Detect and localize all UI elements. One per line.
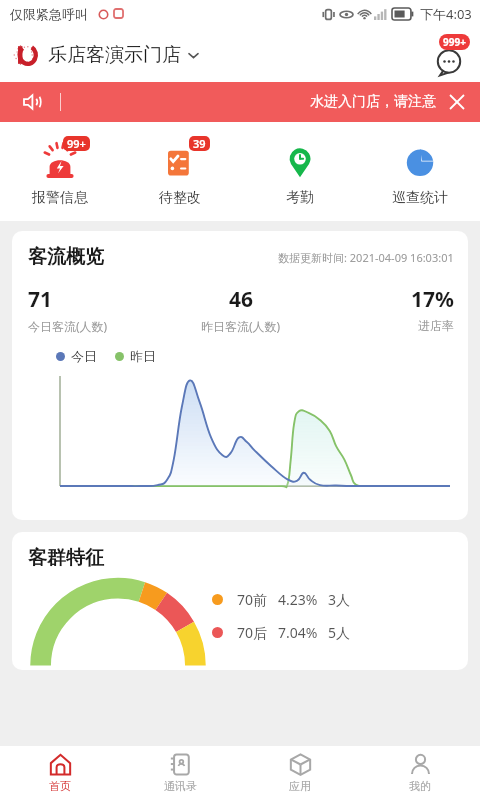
staticText: 水进入门店，请注意 <box>310 93 436 111</box>
staticText: 巡查统计 <box>392 189 448 207</box>
staticText: 17% <box>411 285 454 314</box>
other: Announcement <box>22 92 42 112</box>
staticText: 我的 <box>409 779 431 793</box>
button[interactable]: 99+ <box>0 136 120 207</box>
button[interactable]: 应用 <box>240 746 360 800</box>
staticText: 3人 <box>328 590 351 609</box>
staticText: 99+ <box>67 136 86 151</box>
staticText: 70前 <box>237 590 268 609</box>
staticText: 乐店客演示门店 <box>48 43 181 67</box>
staticText: 仅限紧急呼叫 <box>10 6 88 22</box>
button[interactable]: Messages <box>428 34 470 76</box>
staticText: 下午4:03 <box>420 5 472 23</box>
staticText: 今日 <box>71 348 97 364</box>
button[interactable]: 39 <box>120 136 240 207</box>
staticText: 首页 <box>49 779 71 793</box>
staticText: 今日客流(人数) <box>28 318 108 334</box>
button[interactable]: 巡查统计 <box>360 136 480 207</box>
staticText: 7.04% <box>278 623 318 642</box>
staticText: 999+ <box>443 35 466 49</box>
staticText: 5人 <box>328 623 351 642</box>
staticText: 考勤 <box>286 189 314 207</box>
staticText: 昨日 <box>130 348 156 364</box>
staticText: 应用 <box>289 779 311 793</box>
staticText: 70后 <box>237 623 268 642</box>
staticText: 昨日客流(人数) <box>201 318 281 334</box>
button[interactable]: 通讯录 <box>120 746 240 800</box>
staticText: 进店率 <box>418 318 454 333</box>
button[interactable]: 考勤 <box>240 136 360 207</box>
staticText: 报警信息 <box>32 189 88 207</box>
staticText: 4.23% <box>278 590 318 609</box>
staticText: 通讯录 <box>164 779 197 793</box>
staticText: 客群特征 <box>28 546 104 570</box>
staticText: 39 <box>193 136 206 151</box>
staticText: 待整改 <box>159 189 201 207</box>
button[interactable]: 我的 <box>360 746 480 800</box>
staticText: 客流概览 <box>28 245 104 269</box>
button[interactable]: Close <box>444 89 470 115</box>
staticText: 46 <box>229 285 254 314</box>
staticText: 数据更新时间: 2021-04-09 16:03:01 <box>278 250 454 265</box>
button[interactable]: 70前 <box>212 590 454 609</box>
button[interactable]: 70后 <box>212 623 454 642</box>
button[interactable]: 首页 <box>0 746 120 800</box>
staticText: 71 <box>28 285 53 314</box>
button[interactable]: 乐店客演示门店 <box>14 42 200 68</box>
